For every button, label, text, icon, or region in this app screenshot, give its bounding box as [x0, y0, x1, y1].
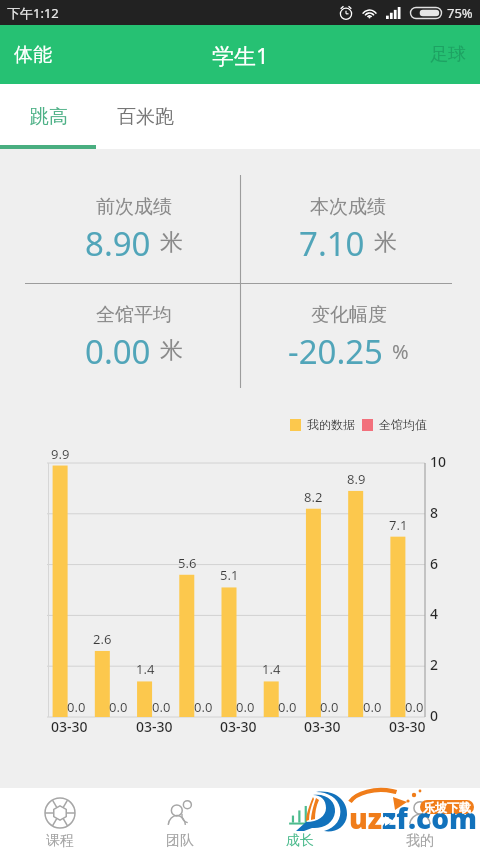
staticText: 0.0 — [109, 698, 128, 716]
staticText: 75% — [447, 4, 473, 22]
button[interactable]: 课程 — [0, 788, 120, 853]
staticText: 米 — [160, 336, 183, 365]
staticText: 03-30 — [51, 717, 88, 736]
staticText: 1.4 — [262, 660, 281, 678]
staticText: 8.90 — [85, 221, 151, 266]
staticText: 03-30 — [304, 717, 341, 736]
staticText: 团队 — [166, 832, 194, 850]
staticText: 变化幅度 — [311, 303, 387, 327]
staticText: 成长 — [286, 832, 314, 850]
staticText: 下午1:12 — [7, 4, 59, 22]
staticText: 1.4 — [136, 660, 155, 678]
staticText: 学生1 — [212, 40, 269, 70]
staticText: 0.0 — [363, 698, 382, 716]
staticText: 前次成绩 — [96, 195, 172, 219]
staticText: 9.9 — [51, 445, 70, 463]
staticText: 我的 — [406, 832, 434, 850]
staticText: 课程 — [46, 832, 74, 850]
staticText: 0.0 — [405, 698, 424, 716]
staticText: 7.1 — [389, 516, 408, 534]
staticText: 03-30 — [220, 717, 257, 736]
staticText: 0 — [430, 706, 439, 725]
button[interactable]: 我的 — [360, 788, 480, 853]
staticText: 全馆平均 — [96, 303, 172, 327]
staticText: % — [392, 338, 409, 365]
other: 团队 — [164, 797, 196, 829]
staticText: 0.0 — [236, 698, 255, 716]
staticText: zf — [382, 799, 408, 837]
button[interactable]: 团队 — [120, 788, 240, 853]
other: 我的 — [404, 797, 436, 829]
staticText: 体能 — [14, 43, 52, 67]
staticText: -20.25 — [288, 329, 383, 374]
staticText: 10 — [430, 452, 447, 471]
other: 成长 — [284, 797, 316, 829]
staticText: 足球 — [430, 43, 466, 66]
staticText: 0.0 — [152, 698, 171, 716]
staticText: 2 — [430, 655, 439, 674]
staticText: 4 — [430, 604, 439, 623]
staticText: 米 — [374, 228, 397, 257]
button[interactable]: 体能 — [0, 25, 66, 84]
staticText: 6 — [430, 554, 439, 573]
staticText: 5.1 — [220, 566, 239, 584]
staticText: uz — [349, 799, 382, 837]
staticText: .com — [408, 799, 478, 837]
other: 课程 — [44, 797, 76, 829]
button[interactable]: 跳高 — [0, 84, 97, 149]
button[interactable]: 成长 — [240, 788, 360, 853]
staticText: 跳高 — [30, 105, 68, 129]
staticText: 我的数据 — [307, 417, 355, 432]
staticText: 米 — [160, 228, 183, 257]
staticText: 2.6 — [93, 630, 112, 648]
button[interactable]: 足球 — [416, 25, 480, 84]
button[interactable]: 百米跑 — [97, 84, 194, 149]
staticText: 百米跑 — [117, 105, 174, 129]
staticText: 0.0 — [278, 698, 297, 716]
staticText: 全馆均值 — [379, 417, 427, 432]
staticText: 8.9 — [347, 470, 366, 488]
staticText: 03-30 — [136, 717, 173, 736]
staticText: 8 — [430, 503, 439, 522]
staticText: 7.10 — [299, 221, 365, 266]
staticText: 8.2 — [304, 488, 323, 506]
staticText: 03-30 — [389, 717, 426, 736]
staticText: 乐坡下载 — [423, 800, 471, 815]
staticText: 0.00 — [85, 329, 151, 374]
staticText: 0.0 — [194, 698, 213, 716]
staticText: 0.0 — [67, 698, 86, 716]
staticText: 0.0 — [320, 698, 339, 716]
staticText: 5.6 — [178, 554, 197, 572]
staticText: 本次成绩 — [310, 195, 386, 219]
